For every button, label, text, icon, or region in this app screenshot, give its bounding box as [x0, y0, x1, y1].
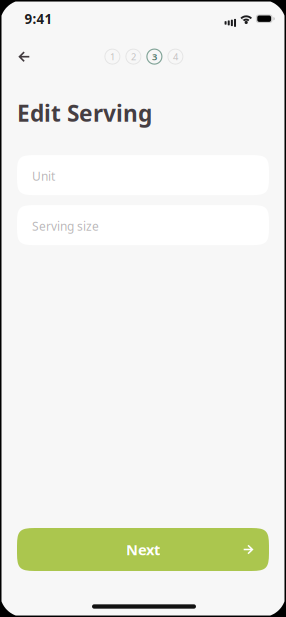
staticText: 9:41	[24, 10, 52, 28]
staticText: 3	[152, 50, 157, 63]
staticText: 1	[110, 50, 115, 63]
staticText: 4	[173, 50, 178, 63]
button[interactable]: Unit	[17, 155, 269, 195]
button[interactable]: Serving size	[17, 205, 269, 245]
staticText: Unit	[32, 168, 55, 184]
staticText: 2	[131, 50, 136, 63]
staticText: Next	[126, 540, 160, 559]
button[interactable]: Back	[8, 43, 40, 71]
staticText: Edit Serving	[17, 98, 152, 128]
staticText: Serving size	[32, 218, 99, 234]
button[interactable]: Next	[17, 528, 269, 571]
